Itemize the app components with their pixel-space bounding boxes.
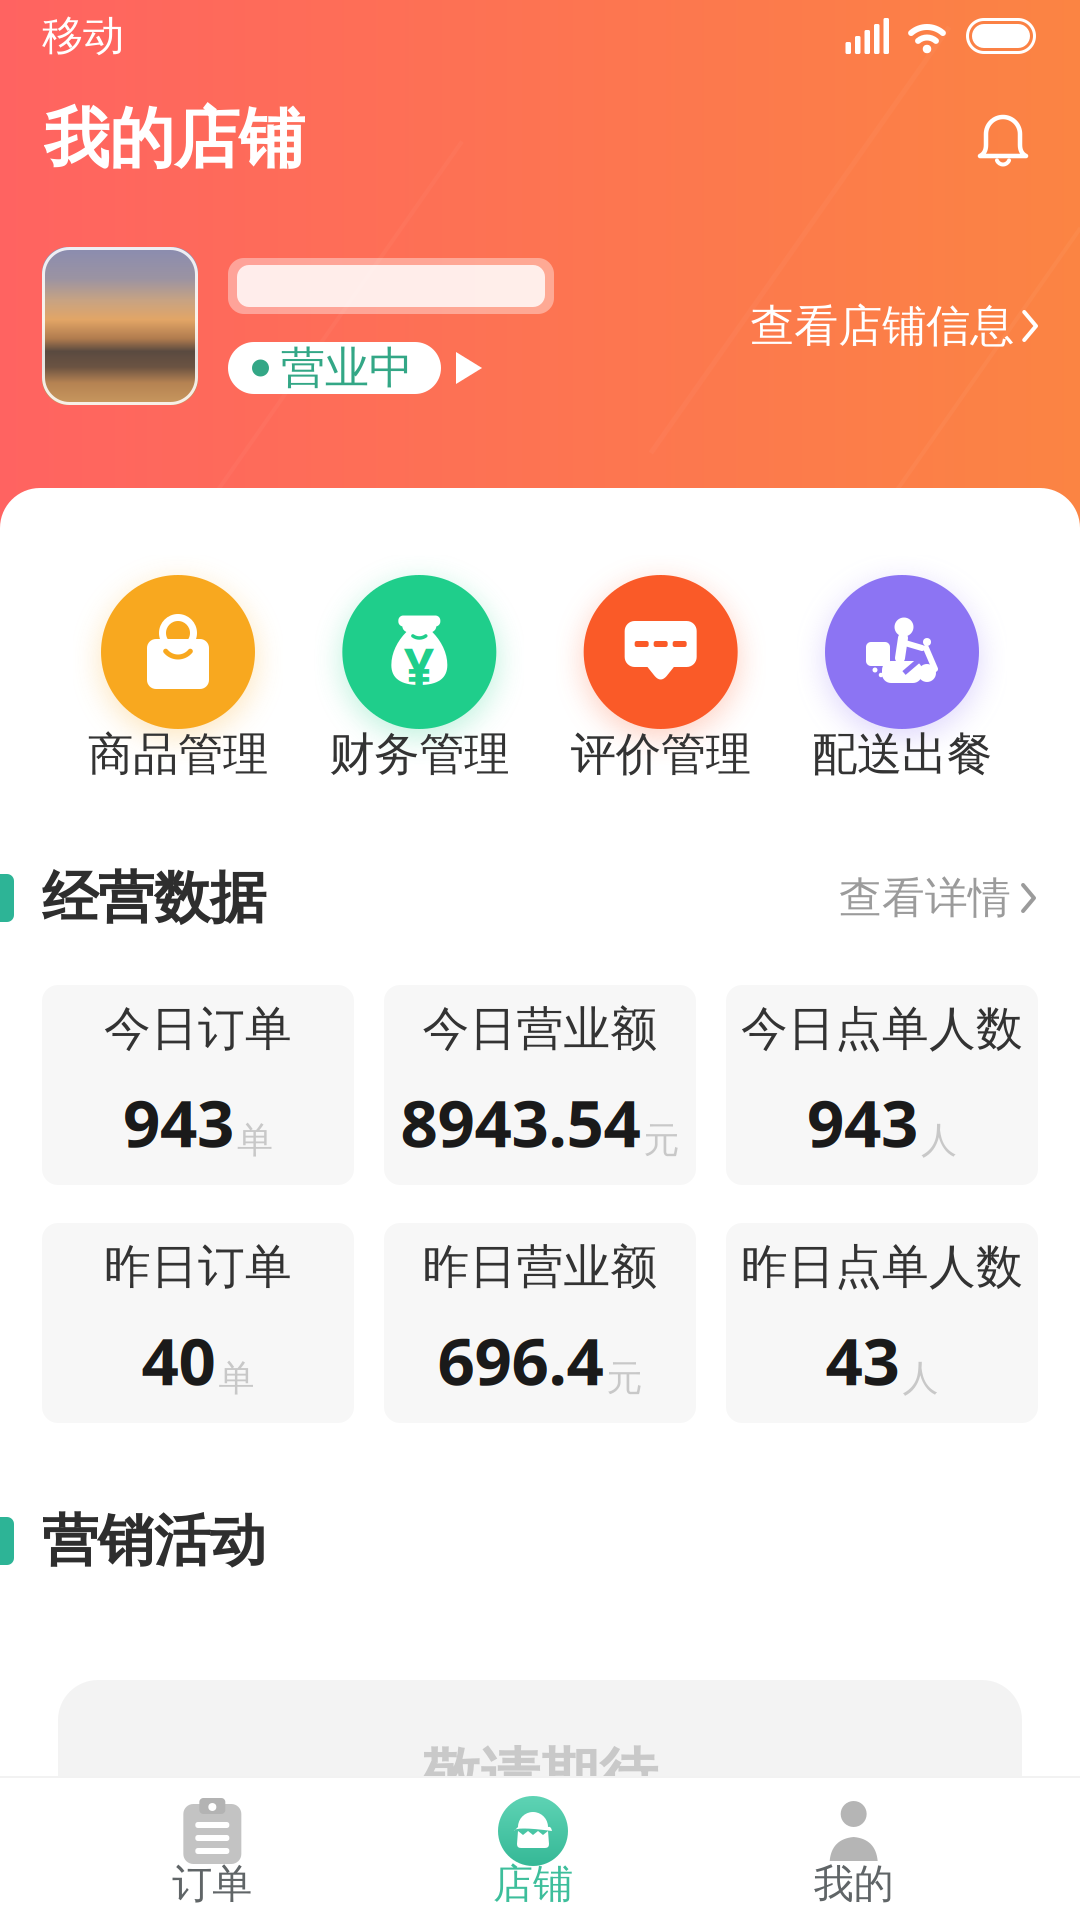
staticText: 昨日营业额 (422, 1238, 657, 1296)
button[interactable]: 通知 (972, 108, 1034, 170)
staticText: 696.4 (437, 1317, 603, 1403)
button[interactable]: 店铺 (373, 1778, 693, 1920)
button[interactable]: 评价管理 (571, 575, 751, 780)
staticText: 单 (237, 1118, 273, 1162)
staticText: 评价管理 (571, 727, 751, 782)
button[interactable]: 订单 (52, 1778, 373, 1920)
staticText: 店铺 (493, 1859, 573, 1908)
staticText: 今日营业额 (422, 1000, 657, 1058)
staticText: 元 (643, 1118, 679, 1162)
staticText: 元 (606, 1356, 642, 1400)
button[interactable]: 营业中 (228, 342, 441, 394)
staticText: 昨日订单 (104, 1238, 292, 1296)
staticText: 我的 (814, 1859, 894, 1908)
staticText: 今日订单 (104, 1000, 292, 1058)
staticText: 单 (218, 1356, 254, 1400)
staticText: 我的店铺 (44, 99, 304, 179)
staticText: 943 (123, 1079, 234, 1165)
staticText: 移动 (42, 11, 124, 61)
button[interactable]: 查看店铺信息 (750, 304, 1040, 348)
button[interactable]: 商品管理 (88, 575, 268, 780)
staticText: 人 (902, 1356, 938, 1400)
button[interactable]: ¥ (329, 575, 509, 780)
button[interactable]: 我的 (693, 1778, 1014, 1920)
staticText: 人 (921, 1118, 957, 1162)
staticText: 财务管理 (329, 727, 509, 782)
staticText: 商品管理 (88, 727, 268, 782)
staticText: 43 (825, 1317, 899, 1403)
staticText: 订单 (172, 1859, 252, 1908)
staticText: 查看详情 (839, 872, 1011, 924)
staticText: 今日点单人数 (741, 1000, 1023, 1058)
staticText: 查看店铺信息 (750, 299, 1014, 353)
staticText: 昨日点单人数 (741, 1238, 1023, 1296)
staticText: 营业中 (281, 341, 413, 395)
staticText: 敬请期待 (422, 1740, 658, 1812)
staticText: ¥ (404, 632, 435, 702)
staticText: 8943.54 (400, 1079, 640, 1165)
staticText: 经营数据 (42, 864, 266, 932)
button[interactable]: 查看详情 (839, 874, 1080, 922)
staticText: 营销活动 (42, 1507, 266, 1575)
staticText: 943 (807, 1079, 918, 1165)
button[interactable]: 配送出餐 (812, 575, 992, 780)
staticText: 配送出餐 (812, 727, 992, 782)
staticText: 40 (141, 1317, 215, 1403)
